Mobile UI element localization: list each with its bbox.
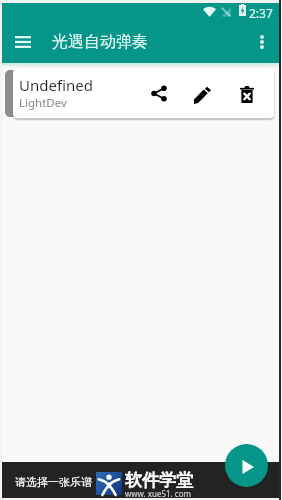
staticText: Undefined (19, 75, 93, 95)
button[interactable]: More options (247, 27, 277, 57)
staticText: www. xue51. com (125, 488, 191, 499)
button[interactable]: Share (147, 81, 171, 105)
button[interactable]: Delete (235, 82, 259, 106)
button[interactable]: Navigation menu (8, 27, 38, 57)
staticText: 2:37 (249, 5, 273, 21)
staticText: 光遇自动弹奏 (52, 32, 148, 52)
staticText: LightDev (19, 95, 67, 111)
button[interactable]: Undefined (13, 69, 274, 118)
staticText: 软件学堂 (125, 470, 193, 491)
staticText: 请选择一张乐谱 (15, 475, 92, 489)
button[interactable]: Play (225, 444, 268, 487)
button[interactable]: Edit (190, 84, 214, 108)
